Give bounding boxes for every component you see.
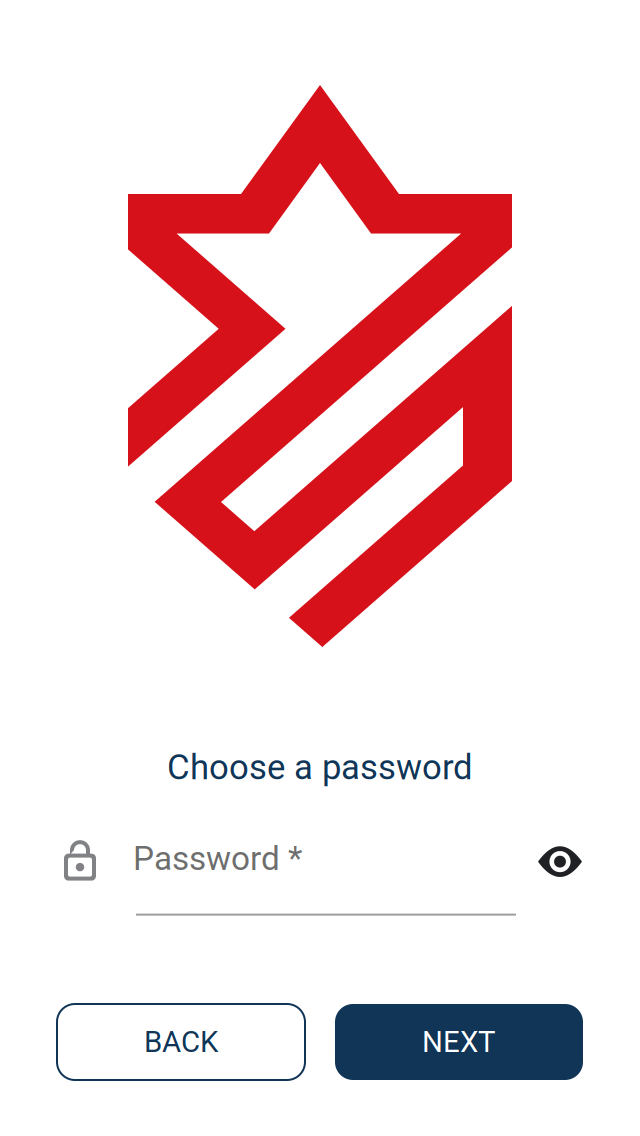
button[interactable]: BACK [57, 1004, 305, 1080]
staticText: BACK [144, 1025, 218, 1059]
button[interactable]: NEXT [335, 1004, 583, 1080]
button[interactable]: Show password [524, 830, 596, 887]
staticText: Password * [133, 839, 302, 878]
staticText: Choose a password [167, 747, 473, 788]
staticText: NEXT [422, 1025, 496, 1059]
